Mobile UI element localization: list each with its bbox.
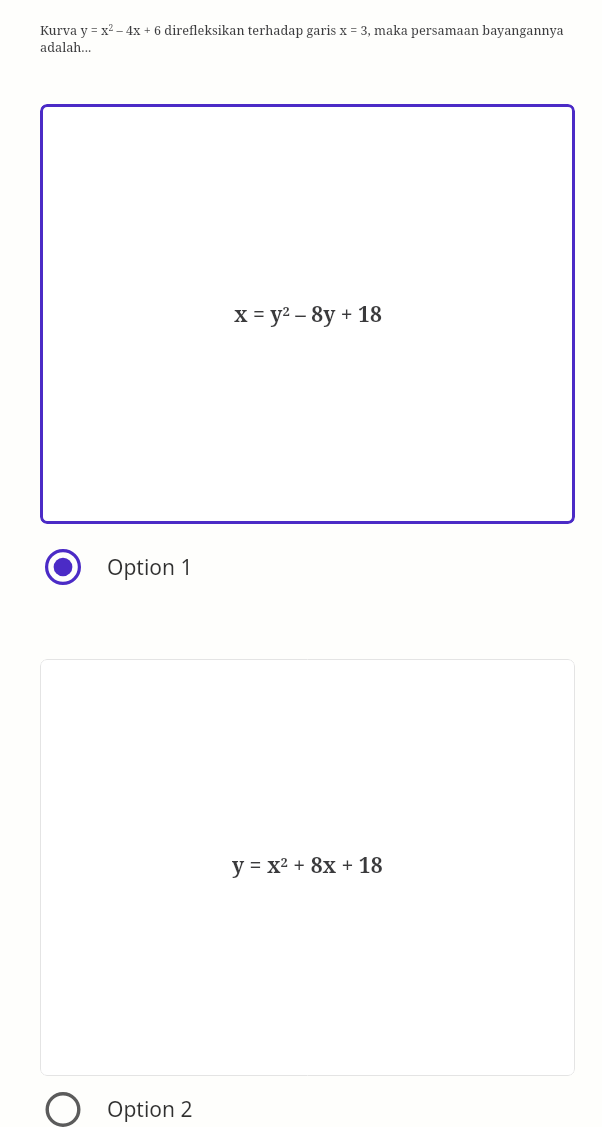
staticText: y = x2 + 8x + 18 [232,851,383,880]
staticText: Kurva y = x2 – 4x + 6 direfleksikan terh… [40,22,582,56]
staticText: x = y2 – 8y + 18 [234,300,382,329]
staticText: Option 2 [107,1095,193,1124]
button[interactable]: x = y2 – 8y + 18 [40,104,575,524]
button[interactable]: y = x2 + 8x + 18 [40,659,575,1076]
button[interactable]: Option 1 [0,537,602,597]
staticText: Option 1 [107,553,193,582]
button[interactable]: Option 2 [0,1092,602,1127]
